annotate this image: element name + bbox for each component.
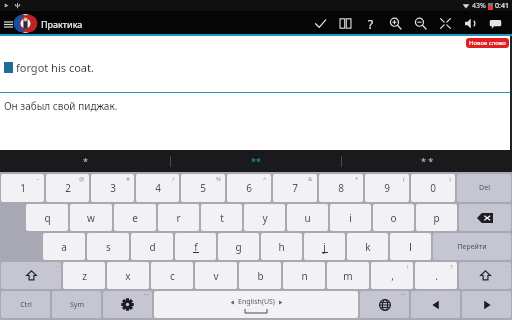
button[interactable]: Backspace [459, 204, 511, 231]
button[interactable]: 5 [181, 174, 225, 202]
staticText: Ctrl [20, 300, 32, 310]
button[interactable]: , [371, 262, 413, 289]
button[interactable]: Change language [360, 291, 409, 318]
button[interactable]: u [287, 204, 328, 231]
staticText: i [349, 211, 352, 225]
button[interactable]: s [87, 233, 129, 260]
button[interactable]: 0 [411, 174, 455, 202]
button[interactable]: Fullscreen [433, 11, 458, 36]
button[interactable]: e [114, 204, 156, 231]
staticText: r [176, 211, 181, 225]
staticText: 5 [200, 181, 206, 195]
button[interactable]: Sound [458, 11, 483, 36]
staticText: k [365, 240, 371, 254]
button[interactable]: 4 [136, 174, 179, 202]
button[interactable]: q [26, 204, 68, 231]
button[interactable]: Help [358, 11, 383, 36]
button[interactable]: Menu [2, 18, 14, 30]
button[interactable]: Новое слово [466, 38, 509, 48]
staticText: Новое слово [469, 39, 506, 47]
staticText: e [132, 211, 138, 225]
staticText: . [506, 262, 508, 269]
staticText: g [235, 240, 242, 254]
button[interactable]: w [70, 204, 112, 231]
staticText: * * [421, 155, 434, 167]
button[interactable]: f [175, 233, 216, 260]
button[interactable]: z [63, 262, 105, 289]
button[interactable]: m [327, 262, 369, 289]
staticText: Sym [70, 300, 84, 310]
staticText: / [172, 175, 175, 183]
staticText: ? [450, 263, 453, 271]
button[interactable]: Move cursor right [462, 291, 511, 318]
button[interactable]: n [283, 262, 325, 289]
staticText: x [125, 269, 131, 283]
button[interactable]: h [261, 233, 302, 260]
button[interactable]: i [330, 204, 371, 231]
button[interactable]: * [0, 150, 170, 172]
button[interactable]: Zoom out [408, 11, 433, 36]
button[interactable]: y [244, 204, 285, 231]
button[interactable]: Ctrl [1, 291, 50, 318]
button[interactable]: Del [457, 174, 511, 202]
button[interactable]: Move cursor left [411, 291, 460, 318]
button[interactable]: c [151, 262, 193, 289]
staticText: u [304, 211, 311, 225]
staticText: 0:41 [495, 1, 509, 11]
staticText: w [87, 211, 95, 225]
staticText: f [194, 240, 198, 254]
button[interactable]: Dictionary [333, 11, 358, 36]
button[interactable]: x [107, 262, 149, 289]
button[interactable]: g [218, 233, 259, 260]
staticText: English(US) [238, 297, 275, 307]
button[interactable]: o [373, 204, 414, 231]
staticText: 7 [292, 181, 298, 195]
staticText: * [83, 155, 88, 167]
staticText: 43% [472, 1, 486, 11]
staticText: 6 [246, 181, 252, 195]
button[interactable]: 1 [1, 174, 44, 202]
button[interactable]: d [131, 233, 173, 260]
button[interactable]: Shift [1, 262, 61, 289]
staticText: # [126, 175, 130, 183]
button[interactable]: j [304, 233, 345, 260]
staticText: 8 [338, 181, 344, 195]
button[interactable]: b [239, 262, 281, 289]
button[interactable]: Comments [483, 11, 508, 36]
button[interactable]: * * [342, 150, 512, 172]
button[interactable]: English(US) [154, 291, 358, 318]
button[interactable]: 8 [319, 174, 363, 202]
button[interactable]: t [201, 204, 242, 231]
button[interactable]: Shift [459, 262, 511, 289]
button[interactable]: a [43, 233, 85, 260]
staticText: ) [449, 175, 451, 183]
button[interactable]: Перейти [433, 233, 511, 260]
staticText: 0 [430, 181, 436, 195]
button[interactable]: Keyboard settings [103, 291, 152, 318]
button[interactable]: l [390, 233, 431, 260]
staticText: ~ [36, 175, 40, 183]
button[interactable]: 6 [227, 174, 271, 202]
button[interactable]: 3 [91, 174, 134, 202]
staticText: l [409, 240, 412, 254]
button[interactable]: v [195, 262, 237, 289]
button[interactable]: k [347, 233, 388, 260]
staticText: o [390, 211, 397, 225]
button[interactable]: ** [171, 150, 341, 172]
button[interactable]: Sym [52, 291, 101, 318]
button[interactable]: Check [308, 11, 333, 36]
staticText: Он забыл свой пиджак. [4, 99, 118, 113]
button[interactable]: r [158, 204, 199, 231]
button[interactable]: 2 [46, 174, 89, 202]
staticText: t [220, 211, 224, 225]
button[interactable]: Zoom in [383, 11, 408, 36]
button[interactable]: 9 [365, 174, 409, 202]
button[interactable]: 7 [273, 174, 317, 202]
staticText: @ [79, 175, 85, 183]
button[interactable]: . [415, 262, 457, 289]
staticText: 4 [155, 181, 161, 195]
staticText: 1 [20, 181, 26, 195]
staticText: . [435, 269, 438, 283]
button[interactable]: p [416, 204, 457, 231]
